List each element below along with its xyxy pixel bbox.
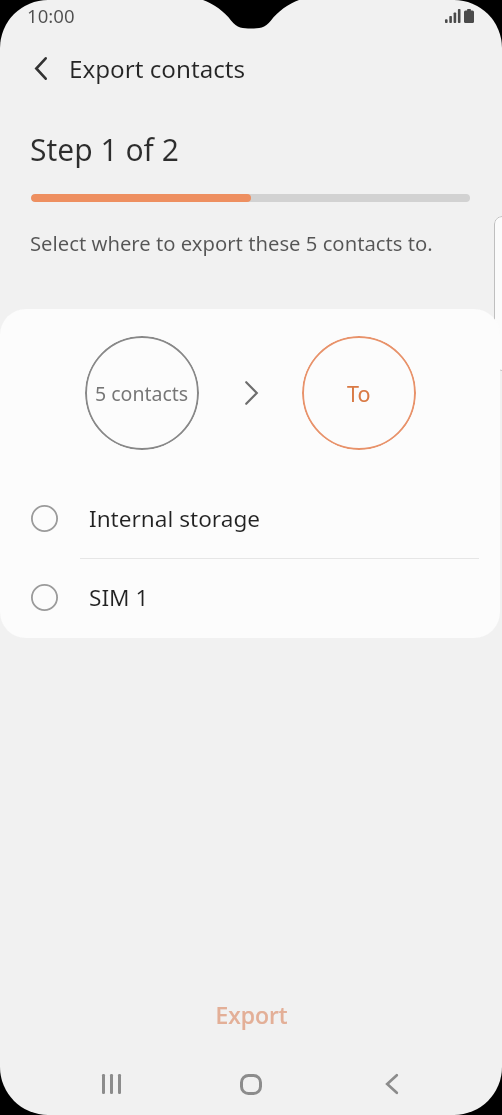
button[interactable]: SIM 1 (0, 558, 500, 636)
button[interactable]: Internal storage (0, 479, 500, 557)
staticText: 10:00 (27, 3, 75, 28)
staticText: Export (215, 999, 288, 1030)
staticText: 5 contacts (95, 380, 189, 407)
button[interactable]: 5 contacts (85, 336, 199, 450)
staticText: Step 1 of 2 (30, 129, 179, 170)
button[interactable]: Export (151, 990, 351, 1038)
staticText: Select where to export these 5 contacts … (30, 229, 433, 257)
staticText: Export contacts (69, 52, 246, 85)
staticText: Internal storage (89, 503, 261, 534)
staticText: To (347, 379, 371, 408)
button[interactable]: To (302, 336, 416, 450)
staticText: SIM 1 (89, 582, 149, 613)
button[interactable]: Home (216, 1053, 286, 1115)
button[interactable]: Navigate up (18, 45, 64, 91)
button[interactable]: Recent apps (76, 1053, 146, 1115)
button[interactable]: Back (357, 1053, 427, 1115)
